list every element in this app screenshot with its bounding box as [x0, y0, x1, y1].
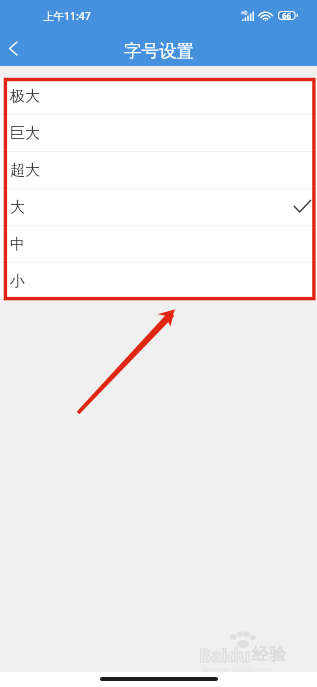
staticText: 极大	[10, 87, 40, 106]
button[interactable]: 小	[0, 263, 317, 299]
staticText: 中	[10, 235, 25, 254]
button[interactable]: 中	[0, 226, 317, 262]
staticText: 经验	[252, 644, 286, 665]
button[interactable]: 超大	[0, 152, 317, 188]
button[interactable]: Back	[0, 31, 30, 66]
staticText: 小	[10, 272, 25, 291]
staticText: Baidu	[199, 643, 251, 668]
staticText: 字号设置	[124, 40, 194, 62]
staticText: jingyan.baidu.com	[203, 664, 273, 675]
button[interactable]: 极大	[0, 78, 317, 114]
button[interactable]: 大	[0, 189, 317, 225]
staticText: 大	[10, 198, 25, 217]
staticText: 66	[282, 10, 292, 21]
staticText: 超大	[10, 161, 40, 180]
staticText: 上午11:47	[43, 9, 91, 23]
button[interactable]: 巨大	[0, 115, 317, 151]
staticText: 巨大	[10, 124, 40, 143]
